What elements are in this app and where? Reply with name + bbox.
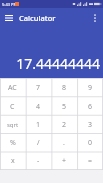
button[interactable]: sqrt: [0, 116, 25, 134]
staticText: 6: [88, 102, 93, 112]
button[interactable]: 4: [25, 97, 51, 116]
button[interactable]: 8: [51, 78, 77, 97]
button[interactable]: 3: [77, 116, 103, 134]
staticText: -: [37, 156, 40, 166]
staticText: Calculator: [19, 13, 56, 23]
button[interactable]: C: [0, 97, 25, 116]
button[interactable]: 6: [77, 97, 103, 116]
button[interactable]: 1: [25, 116, 51, 134]
staticText: sqrt: [7, 121, 19, 129]
staticText: .: [63, 138, 65, 148]
staticText: x: [11, 156, 15, 166]
staticText: 1: [36, 120, 41, 130]
staticText: 3: [88, 120, 93, 130]
button[interactable]: -: [25, 152, 51, 170]
button[interactable]: +: [51, 152, 77, 170]
staticText: 2: [62, 120, 67, 130]
staticText: 0: [88, 138, 93, 148]
button[interactable]: =: [77, 152, 103, 170]
button[interactable]: More options: [89, 12, 101, 24]
staticText: 5: [62, 102, 67, 112]
button[interactable]: AC: [0, 78, 25, 97]
staticText: 5:43 PM: [2, 2, 18, 7]
staticText: +: [62, 156, 67, 166]
button[interactable]: 7: [25, 78, 51, 97]
staticText: C: [10, 102, 15, 112]
button[interactable]: x: [0, 152, 25, 170]
button[interactable]: .: [51, 134, 77, 152]
button[interactable]: %: [0, 134, 25, 152]
staticText: /: [37, 138, 40, 148]
staticText: 7: [36, 83, 41, 93]
staticText: %: [10, 138, 16, 148]
staticText: 4: [36, 102, 41, 112]
button[interactable]: 5: [51, 97, 77, 116]
button[interactable]: 9: [77, 78, 103, 97]
button[interactable]: /: [25, 134, 51, 152]
button[interactable]: Open navigation menu: [3, 12, 15, 24]
staticText: 17.44444444: [16, 54, 100, 73]
staticText: =: [88, 156, 93, 166]
button[interactable]: 2: [51, 116, 77, 134]
button[interactable]: 0: [77, 134, 103, 152]
staticText: 9: [88, 83, 93, 93]
staticText: 8: [62, 83, 67, 93]
staticText: AC: [8, 83, 17, 93]
